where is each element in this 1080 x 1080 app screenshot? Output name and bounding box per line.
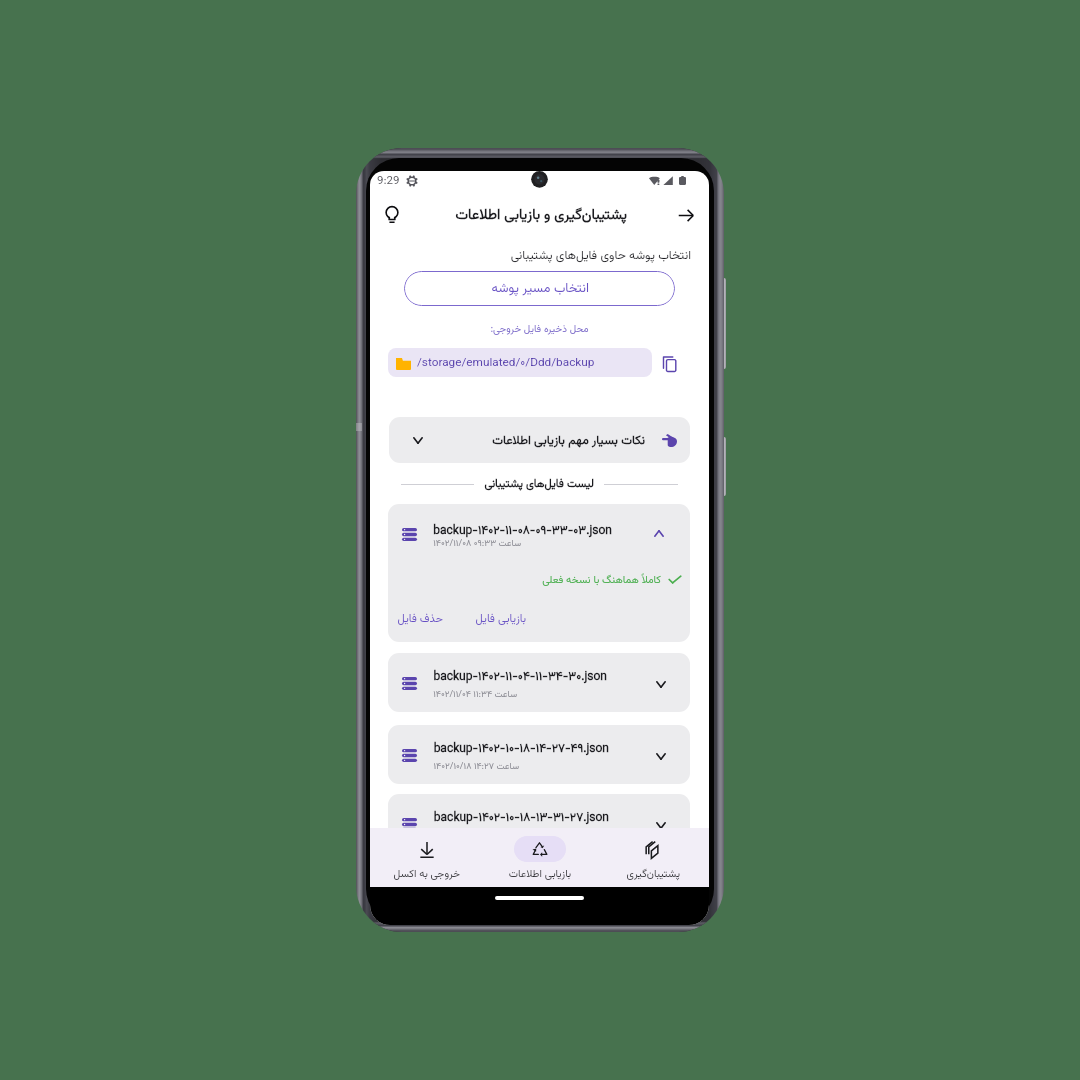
staticText: پشتیبان‌گیری [626, 866, 680, 882]
staticText: نکات بسیار مهم بازیابی اطلاعات [492, 431, 645, 450]
staticText: 9:29 [377, 172, 400, 190]
button[interactable]: انتخاب مسیر پوشه [404, 271, 675, 306]
staticText: backup-۱۴۰۲-۱۰-۱۸-۱۴-۲۷-۴۹.json [433, 740, 609, 759]
staticText: کاملاً هماهنگ با نسخه فعلی [388, 572, 661, 588]
staticText: محل ذخیره فایل خروجی: [370, 322, 709, 338]
button[interactable]: پشتیبان‌گیری [596, 828, 709, 887]
button[interactable]: حذف فایل [391, 607, 449, 633]
staticText: ساعت ۰۹:۳۳ ۱۴۰۲/۱۱/۰۸ [433, 537, 521, 551]
button[interactable]: خروجی به اکسل [370, 828, 483, 887]
staticText: انتخاب پوشه حاوی فایل‌های پشتیبانی [370, 246, 691, 265]
staticText: backup-۱۴۰۲-۱۱-۰۸-۰۹-۳۳-۰۳.json [433, 522, 612, 541]
button[interactable]: بازیابی اطلاعات [483, 828, 596, 887]
staticText: backup-۱۴۰۲-۱۱-۰۴-۱۱-۳۴-۳۰.json [433, 668, 607, 687]
staticText: بازیابی فایل [475, 611, 526, 629]
staticText: خروجی به اکسل [393, 866, 460, 882]
button[interactable]: backup-۱۴۰۲-۱۱-۰۸-۰۹-۳۳-۰۳.json [388, 504, 690, 642]
staticText: لیست فایل‌های پشتیبانی [484, 476, 594, 493]
staticText: پشتیبان‌گیری و بازیابی اطلاعات [455, 204, 627, 226]
button[interactable]: backup-۱۴۰۲-۱۰-۱۸-۱۳-۳۱-۲۷.json [388, 794, 690, 853]
button[interactable]: بازیابی فایل [469, 607, 532, 633]
button[interactable]: /storage/emulated/۰/Ddd/backup [388, 348, 652, 377]
button[interactable]: Tips [375, 198, 409, 232]
staticText: بازیابی اطلاعات [508, 866, 571, 882]
staticText: /storage/emulated/۰/Ddd/backup [417, 354, 595, 372]
button[interactable]: نکات بسیار مهم بازیابی اطلاعات [389, 417, 690, 463]
button[interactable]: backup-۱۴۰۲-۱۰-۱۸-۱۴-۲۷-۴۹.json [388, 725, 690, 784]
button[interactable]: Back [669, 198, 703, 232]
staticText: انتخاب مسیر پوشه [491, 279, 589, 299]
staticText: ساعت ۱۱:۳۴ ۱۴۰۲/۱۱/۰۴ [433, 688, 517, 702]
button[interactable]: backup-۱۴۰۲-۱۱-۰۴-۱۱-۳۴-۳۰.json [388, 653, 690, 712]
button[interactable]: Copy path [656, 350, 683, 377]
staticText: ساعت ۱۴:۲۷ ۱۴۰۲/۱۰/۱۸ [433, 760, 519, 774]
staticText: backup-۱۴۰۲-۱۰-۱۸-۱۳-۳۱-۲۷.json [433, 809, 609, 828]
staticText: حذف فایل [397, 611, 443, 629]
